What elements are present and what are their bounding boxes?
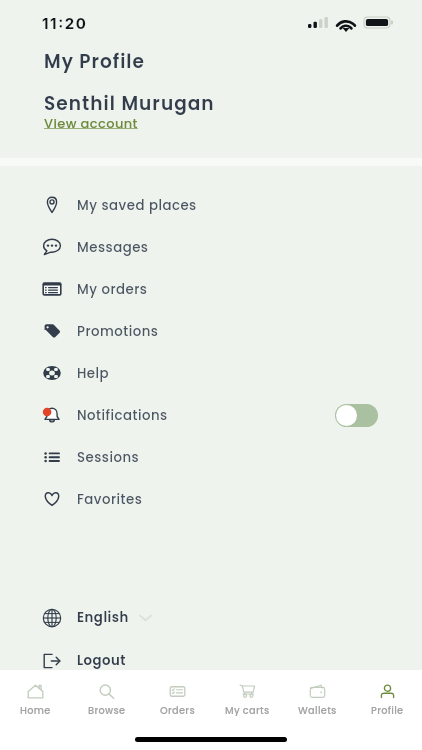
staticText: My orders: [77, 280, 148, 299]
staticText: Orders: [160, 704, 195, 716]
button[interactable]: View account: [44, 114, 138, 132]
button[interactable]: Notifications: [0, 394, 422, 436]
button[interactable]: Messages: [0, 226, 422, 268]
staticText: View account: [44, 114, 138, 132]
button[interactable]: Profile: [352, 670, 422, 716]
button[interactable]: My saved places: [0, 184, 422, 226]
staticText: Profile: [371, 704, 404, 716]
button[interactable]: My carts: [212, 670, 282, 716]
staticText: Logout: [77, 651, 127, 670]
button[interactable]: Orders: [142, 670, 212, 716]
staticText: Sessions: [77, 448, 140, 467]
button[interactable]: Browse: [71, 670, 142, 716]
button[interactable]: English: [0, 596, 422, 639]
staticText: Wallets: [298, 704, 337, 716]
button[interactable]: Logout: [0, 639, 422, 682]
button[interactable]: My orders: [0, 268, 422, 310]
staticText: 11:20: [42, 14, 88, 32]
staticText: Help: [77, 364, 110, 383]
button[interactable]: Notifications toggle: [335, 404, 378, 427]
button[interactable]: Wallets: [282, 670, 352, 716]
button[interactable]: Home: [0, 670, 71, 716]
staticText: Promotions: [77, 322, 159, 341]
staticText: My carts: [225, 704, 270, 716]
staticText: Home: [20, 704, 51, 716]
staticText: Notifications: [77, 406, 168, 425]
button[interactable]: Help: [0, 352, 422, 394]
staticText: Senthil Murugan: [44, 91, 215, 117]
staticText: Browse: [88, 704, 126, 716]
staticText: Messages: [77, 238, 149, 257]
staticText: My Profile: [44, 49, 145, 75]
button[interactable]: Favorites: [0, 478, 422, 520]
staticText: My saved places: [77, 196, 197, 215]
button[interactable]: Sessions: [0, 436, 422, 478]
staticText: Favorites: [77, 490, 143, 509]
staticText: English: [77, 608, 129, 627]
button[interactable]: Promotions: [0, 310, 422, 352]
